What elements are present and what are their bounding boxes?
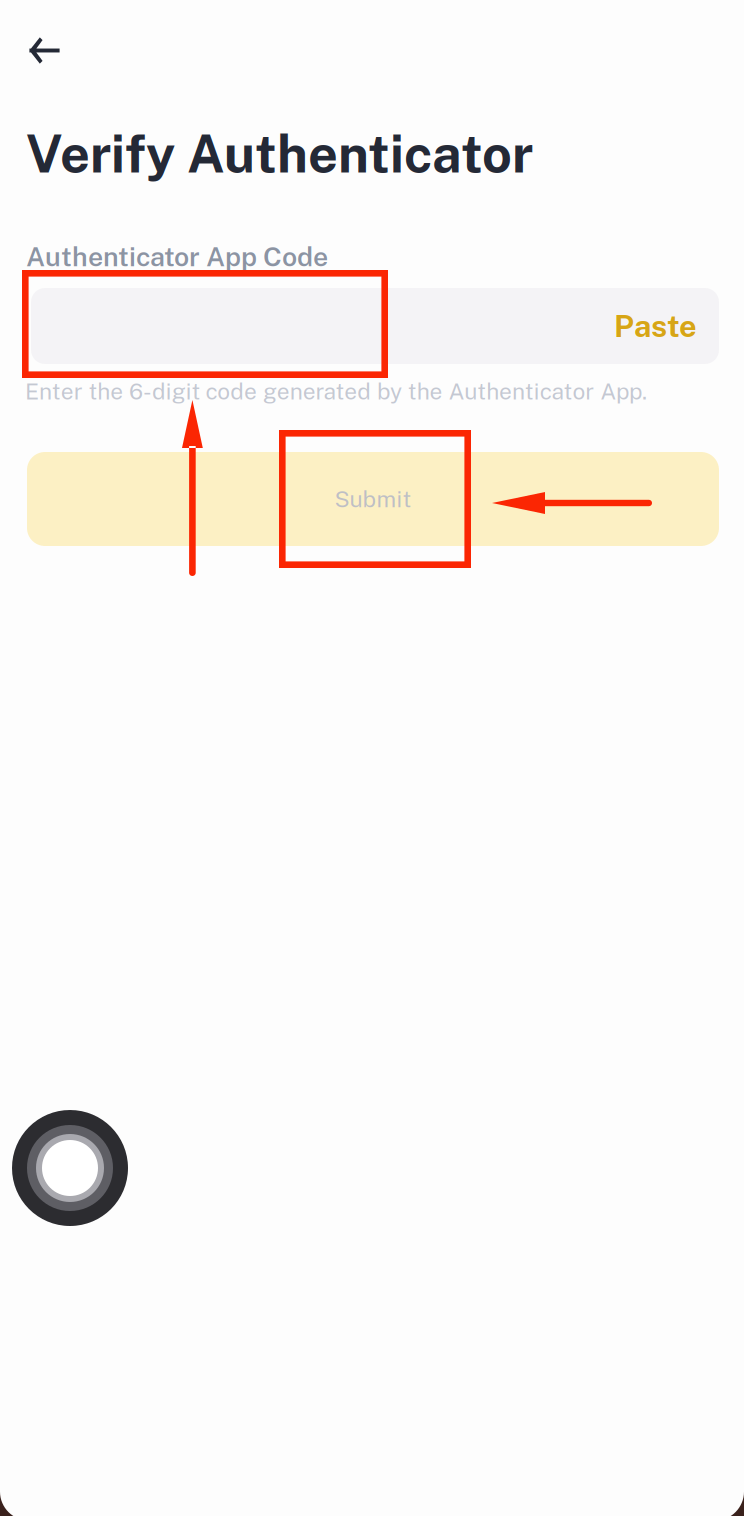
staticText: Enter the 6-digit code generated by the … xyxy=(25,378,647,405)
button[interactable]: Submit xyxy=(27,452,719,546)
button[interactable]: Back xyxy=(12,22,76,78)
staticText: Authenticator App Code xyxy=(26,241,328,272)
staticText: Verify Authenticator xyxy=(26,123,533,184)
button[interactable]: Paste xyxy=(31,288,719,364)
staticText: Paste xyxy=(614,308,697,344)
staticText: Submit xyxy=(334,486,411,512)
